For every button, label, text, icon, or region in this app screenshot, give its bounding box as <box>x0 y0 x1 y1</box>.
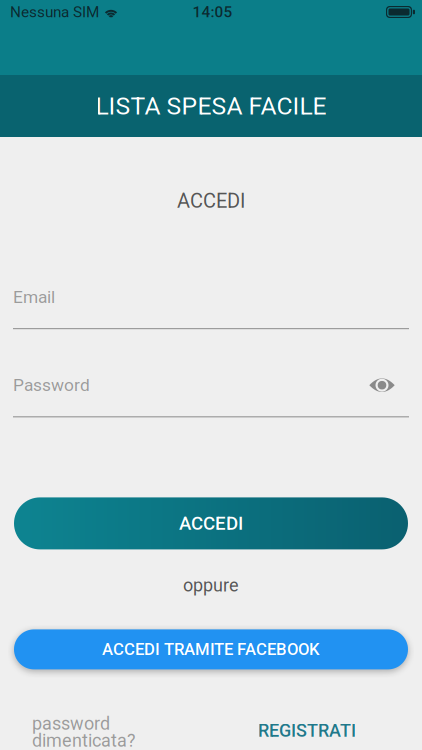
button[interactable]: ACCEDI TRAMITE FACEBOOK <box>14 629 408 669</box>
staticText: REGISTRATI <box>258 720 356 741</box>
staticText: password <box>32 713 110 734</box>
staticText: dimenticata? <box>32 730 136 750</box>
staticText: Password <box>13 375 90 395</box>
staticText: ACCEDI <box>177 189 245 213</box>
button[interactable]: password <box>32 715 136 749</box>
button[interactable]: Mostra password <box>369 376 409 394</box>
staticText: ACCEDI TRAMITE FACEBOOK <box>102 640 320 659</box>
staticText: Nessuna SIM <box>10 3 99 21</box>
staticText: 14:05 <box>192 3 232 21</box>
staticText: Email <box>13 287 55 307</box>
button[interactable]: ACCEDI <box>14 497 408 549</box>
staticText: oppure <box>183 575 239 596</box>
staticText: ACCEDI <box>179 512 243 534</box>
staticText: LISTA SPESA FACILE <box>95 91 326 120</box>
button[interactable]: REGISTRATI <box>258 720 356 741</box>
